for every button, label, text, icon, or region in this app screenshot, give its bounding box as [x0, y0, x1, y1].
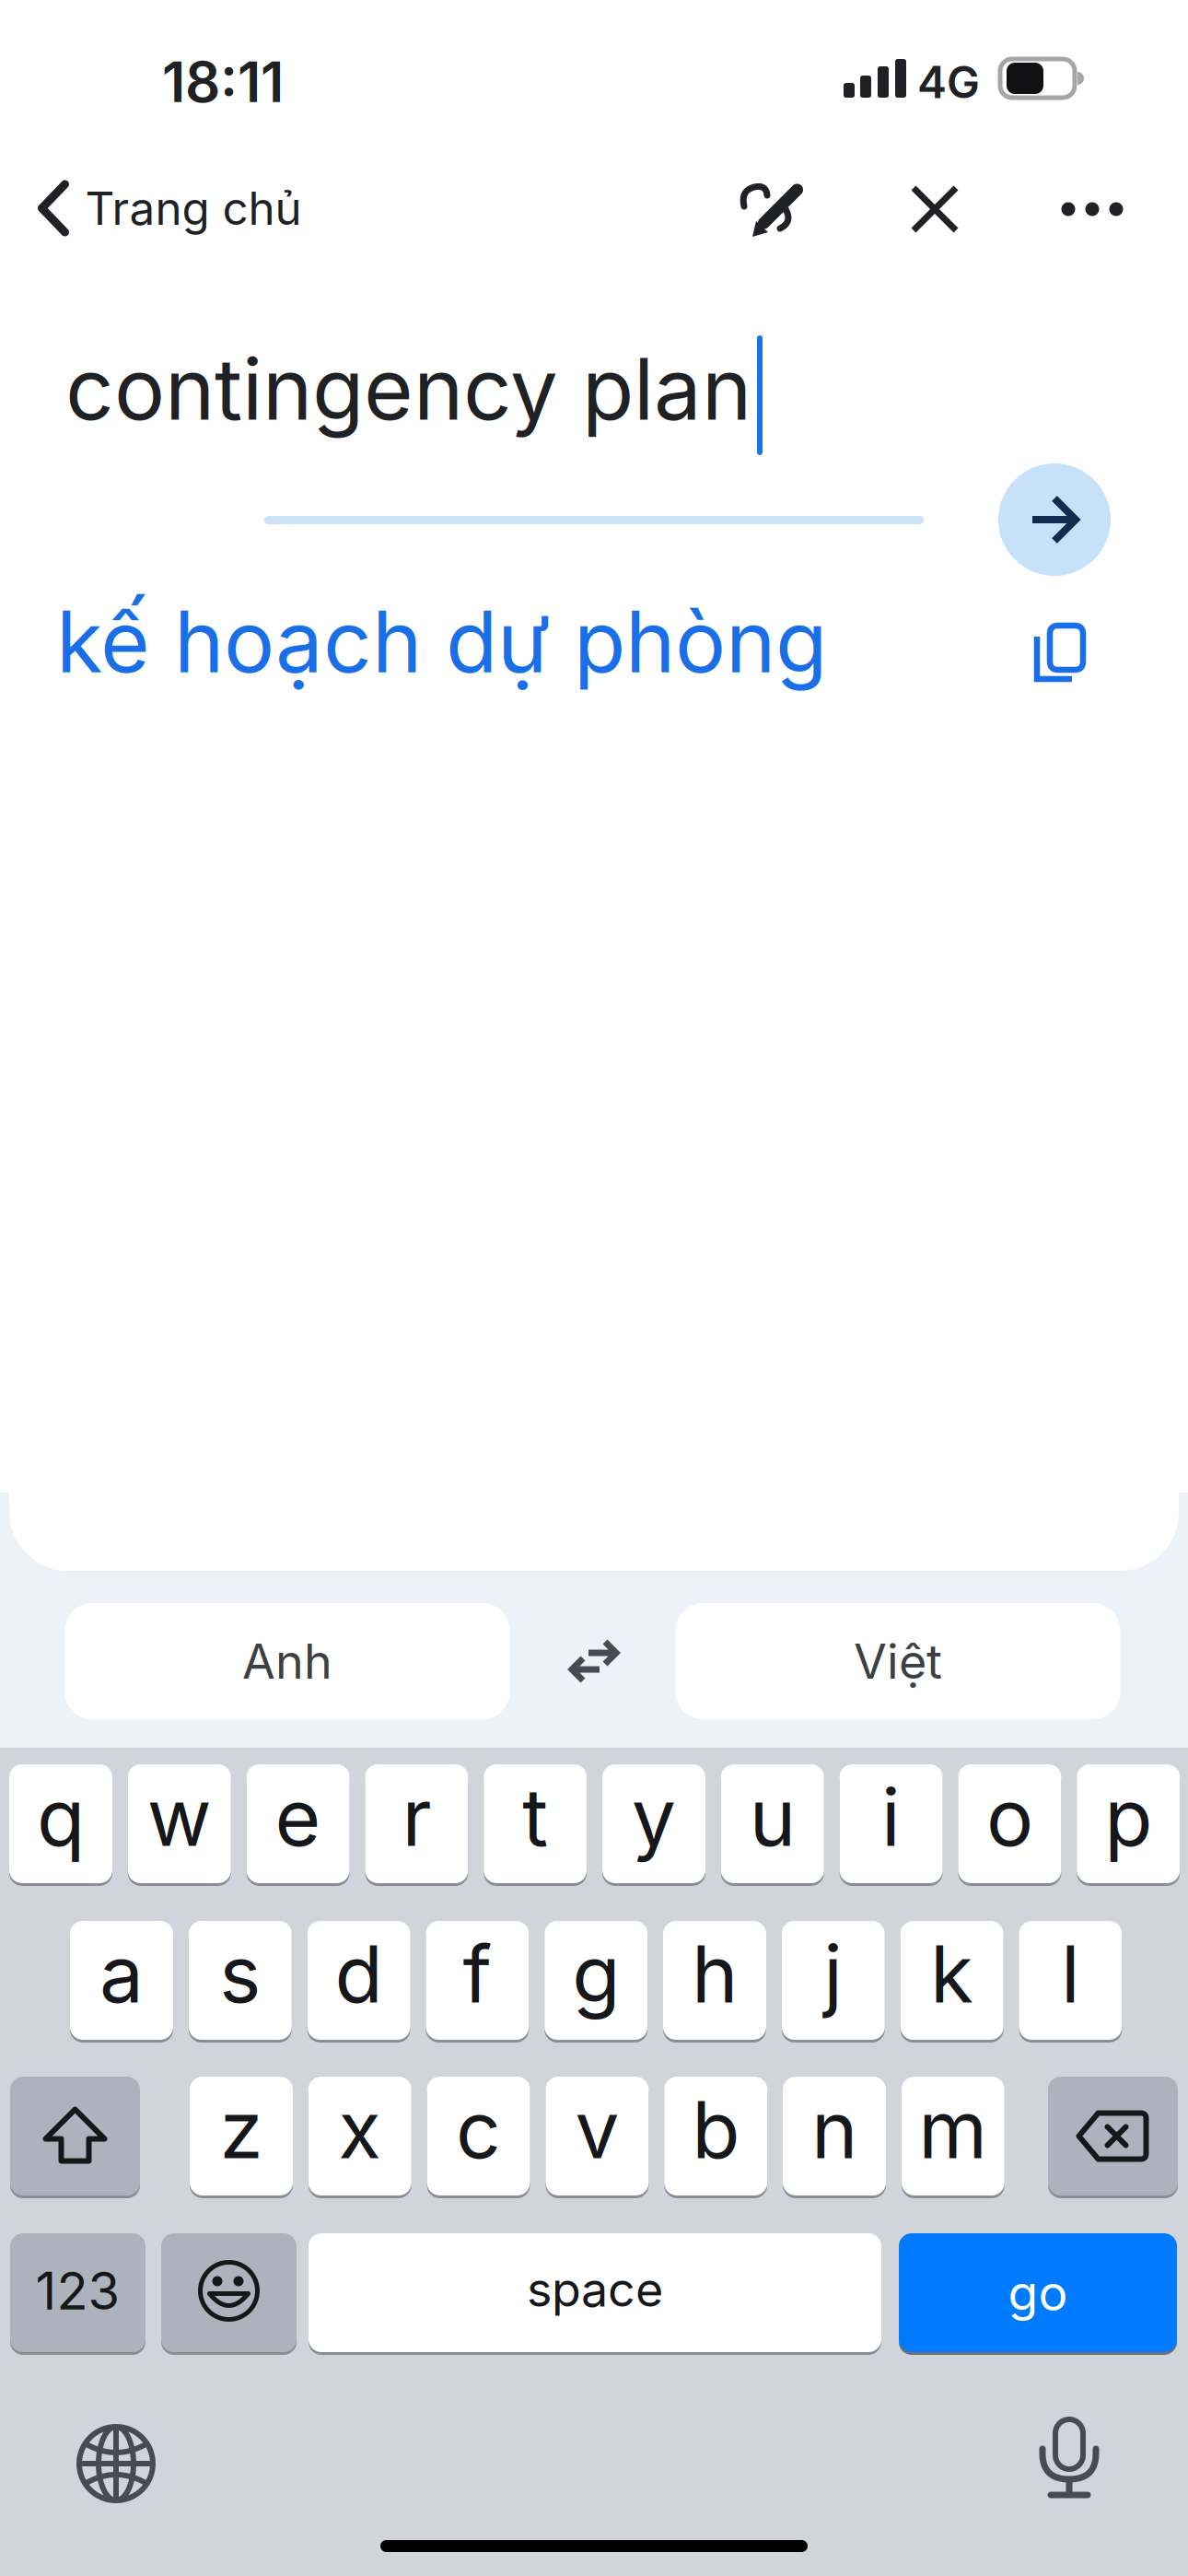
staticText: x	[338, 2083, 382, 2176]
button[interactable]: Next keyboard	[74, 2421, 158, 2506]
button[interactable]: k	[900, 1921, 1003, 2040]
button[interactable]: z	[190, 2077, 293, 2195]
button[interactable]: f	[426, 1921, 529, 2040]
staticText: v	[575, 2083, 619, 2176]
button[interactable]: w	[128, 1764, 231, 1883]
button[interactable]: b	[664, 2077, 767, 2195]
button[interactable]: g	[544, 1921, 648, 2040]
button[interactable]: i	[840, 1764, 943, 1883]
button[interactable]: Việt	[676, 1603, 1120, 1719]
staticText: g	[572, 1928, 620, 2020]
staticText: d	[335, 1928, 383, 2020]
staticText: t	[522, 1771, 548, 1864]
staticText: 4G	[917, 56, 980, 108]
button[interactable]: Close	[906, 181, 963, 238]
staticText: z	[220, 2083, 263, 2176]
button[interactable]: More	[1061, 202, 1123, 216]
button[interactable]: Dictation	[1040, 2418, 1099, 2507]
staticText: Anh	[242, 1633, 332, 1689]
button[interactable]: Delete	[1048, 2077, 1178, 2195]
staticText: j	[824, 1928, 843, 2020]
button[interactable]: Handwriting	[740, 171, 818, 249]
staticText: e	[275, 1771, 321, 1864]
button[interactable]: d	[307, 1921, 410, 2040]
staticText: h	[692, 1928, 738, 2020]
button[interactable]: n	[783, 2077, 886, 2195]
button[interactable]: q	[9, 1764, 112, 1883]
staticText: k	[930, 1928, 974, 2020]
staticText: c	[456, 2083, 501, 2176]
button[interactable]: m	[901, 2077, 1005, 2195]
button[interactable]: p	[1077, 1764, 1180, 1883]
button[interactable]: a	[70, 1921, 173, 2040]
staticText: a	[99, 1928, 144, 2020]
button[interactable]: o	[958, 1764, 1061, 1883]
staticText: go	[1008, 2264, 1068, 2322]
button[interactable]: v	[546, 2077, 649, 2195]
button[interactable]: Swap languages	[565, 1639, 623, 1683]
staticText: f	[463, 1928, 492, 2020]
button[interactable]: c	[427, 2077, 530, 2195]
button[interactable]: Anh	[65, 1603, 510, 1719]
button[interactable]: Translate	[998, 463, 1111, 576]
button[interactable]: Emoji	[161, 2233, 297, 2352]
staticText: Trang chủ	[85, 181, 302, 235]
button[interactable]: 123	[10, 2233, 146, 2352]
button[interactable]: u	[721, 1764, 824, 1883]
staticText: s	[219, 1928, 261, 2020]
staticText: m	[918, 2083, 988, 2176]
staticText: w	[147, 1771, 212, 1864]
staticText: l	[1061, 1928, 1080, 2020]
staticText: kế hoạch dự phòng	[56, 591, 827, 691]
staticText: r	[402, 1771, 431, 1864]
button[interactable]: x	[308, 2077, 411, 2195]
staticText: contingency plan	[65, 339, 751, 439]
staticText: i	[881, 1771, 901, 1864]
staticText: 18:11	[162, 49, 284, 115]
button[interactable]: l	[1019, 1921, 1122, 2040]
button[interactable]: y	[602, 1764, 705, 1883]
staticText: 123	[35, 2260, 120, 2321]
staticText: y	[632, 1771, 676, 1864]
button[interactable]: r	[365, 1764, 468, 1883]
button[interactable]: j	[782, 1921, 885, 2040]
button[interactable]: Trang chủ	[35, 180, 302, 237]
staticText: space	[527, 2261, 663, 2317]
button[interactable]: h	[663, 1921, 766, 2040]
button[interactable]: go	[899, 2233, 1177, 2352]
staticText: n	[811, 2083, 857, 2176]
staticText: b	[692, 2083, 740, 2176]
button[interactable]: t	[484, 1764, 587, 1883]
button[interactable]: space	[309, 2233, 881, 2352]
staticText: p	[1104, 1771, 1152, 1864]
staticText: u	[749, 1771, 795, 1864]
staticText: o	[986, 1771, 1033, 1864]
button[interactable]: s	[189, 1921, 292, 2040]
staticText: Việt	[854, 1633, 942, 1689]
button[interactable]: Copy translation	[1029, 622, 1093, 686]
button[interactable]: e	[246, 1764, 350, 1883]
button[interactable]: Shift	[10, 2077, 140, 2195]
staticText: q	[37, 1771, 85, 1864]
